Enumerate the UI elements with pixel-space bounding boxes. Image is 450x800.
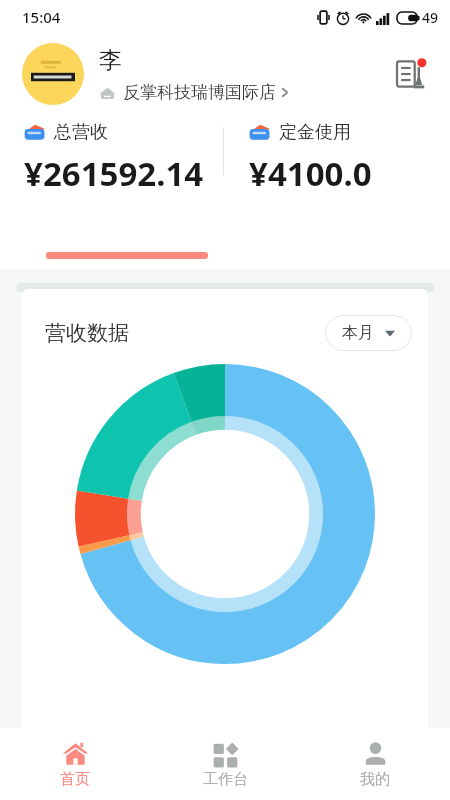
staticText: 总营收 <box>54 121 108 144</box>
staticText: 49 <box>422 8 439 27</box>
staticText: ¥261592.14 <box>24 151 204 196</box>
button[interactable]: 本月 <box>325 315 412 351</box>
staticText: 本月 <box>342 323 374 343</box>
button[interactable]: 我的 <box>300 732 450 797</box>
button[interactable]: 工作台 <box>150 732 300 797</box>
button[interactable]: 反掌科技瑞博国际店 <box>99 82 289 103</box>
staticText: 首页 <box>60 770 90 789</box>
staticText: ¥4100.0 <box>249 151 372 196</box>
staticText: 15:04 <box>22 7 61 27</box>
staticText: 反掌科技瑞博国际店 <box>123 82 276 103</box>
button[interactable]: 总营收 <box>24 121 225 196</box>
staticText: 李 <box>99 46 122 75</box>
button[interactable]: Avatar <box>22 43 84 105</box>
staticText: 定金使用 <box>279 121 351 144</box>
staticText: 工作台 <box>203 770 248 789</box>
button[interactable]: Orders <box>390 52 434 96</box>
button[interactable]: 首页 <box>0 732 150 797</box>
staticText: 我的 <box>360 770 390 789</box>
staticText: 营收数据 <box>45 320 129 346</box>
button[interactable]: 定金使用 <box>249 121 450 196</box>
